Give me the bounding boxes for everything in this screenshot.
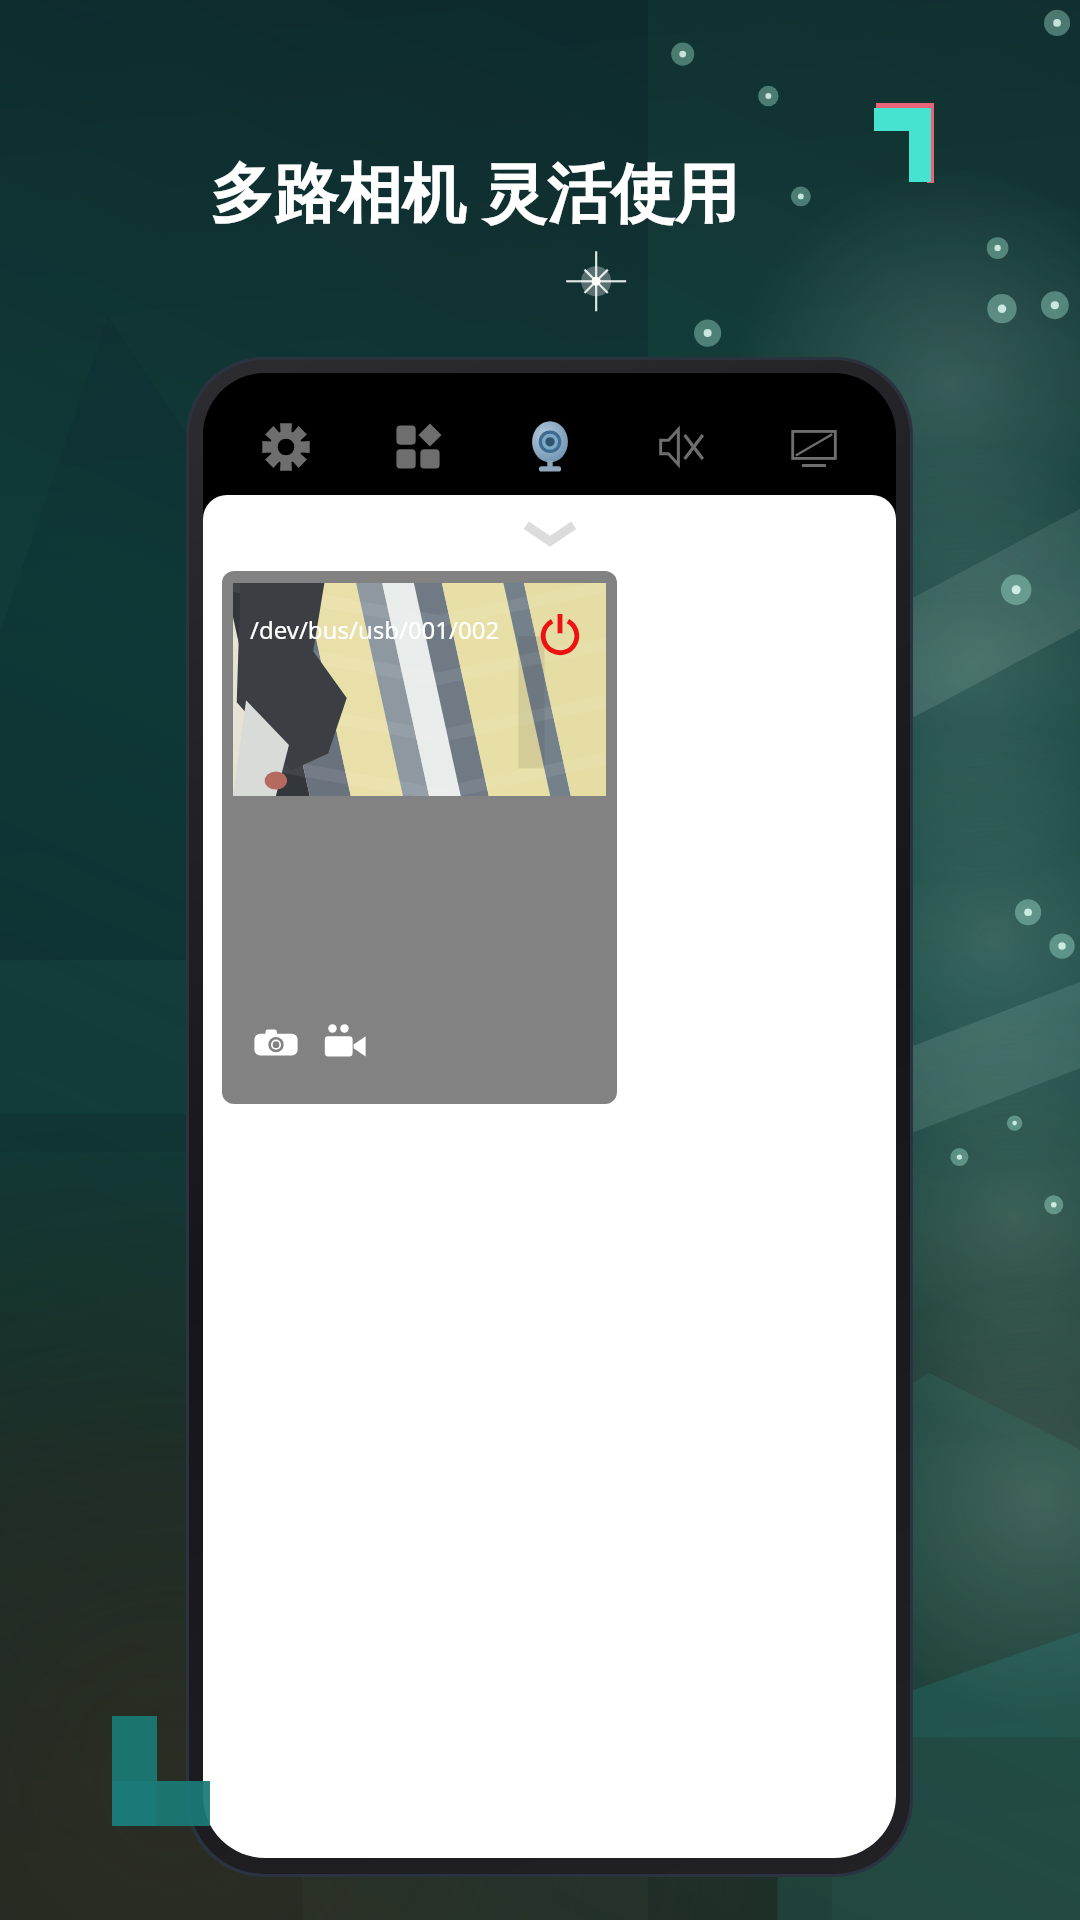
staticText: 多路相机 灵活使用 xyxy=(210,148,739,235)
button[interactable]: Settings xyxy=(219,403,352,491)
button[interactable]: Display xyxy=(748,403,880,491)
button[interactable]: Mute xyxy=(616,403,748,491)
staticText: /dev/bus/usb/001/002 xyxy=(250,613,500,646)
button[interactable]: /dev/bus/usb/001/002 xyxy=(222,571,617,1104)
button[interactable]: Power xyxy=(536,609,584,657)
button[interactable]: Record video xyxy=(320,1018,368,1066)
button[interactable]: Collapse xyxy=(203,495,896,571)
button[interactable]: Apps xyxy=(352,403,484,491)
button[interactable]: Camera xyxy=(484,403,616,491)
button[interactable]: Take photo xyxy=(252,1018,300,1066)
